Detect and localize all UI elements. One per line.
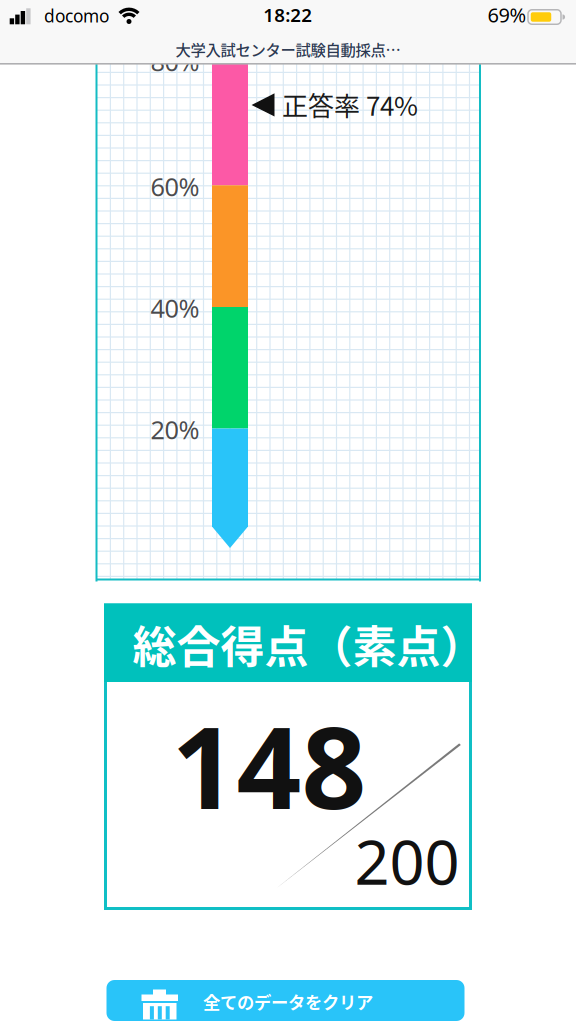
staticText: 正答率 74% — [282, 86, 418, 123]
staticText: 200 — [354, 820, 459, 902]
staticText: docomo — [44, 4, 109, 27]
button[interactable]: 全てのデータをクリア — [106, 980, 464, 1021]
staticText: 全てのデータをクリア — [203, 989, 373, 1014]
staticText: 69% — [487, 1, 526, 28]
staticText: 20% — [150, 413, 199, 446]
staticText: 総合得点（素点） — [132, 612, 484, 676]
staticText: 18:22 — [263, 2, 312, 27]
staticText: 60% — [150, 169, 199, 203]
staticText: 80% — [150, 45, 199, 78]
staticText: 148 — [171, 690, 366, 840]
staticText: 40% — [150, 291, 199, 325]
staticText: 大学入試センター試験自動採点… — [175, 38, 400, 60]
